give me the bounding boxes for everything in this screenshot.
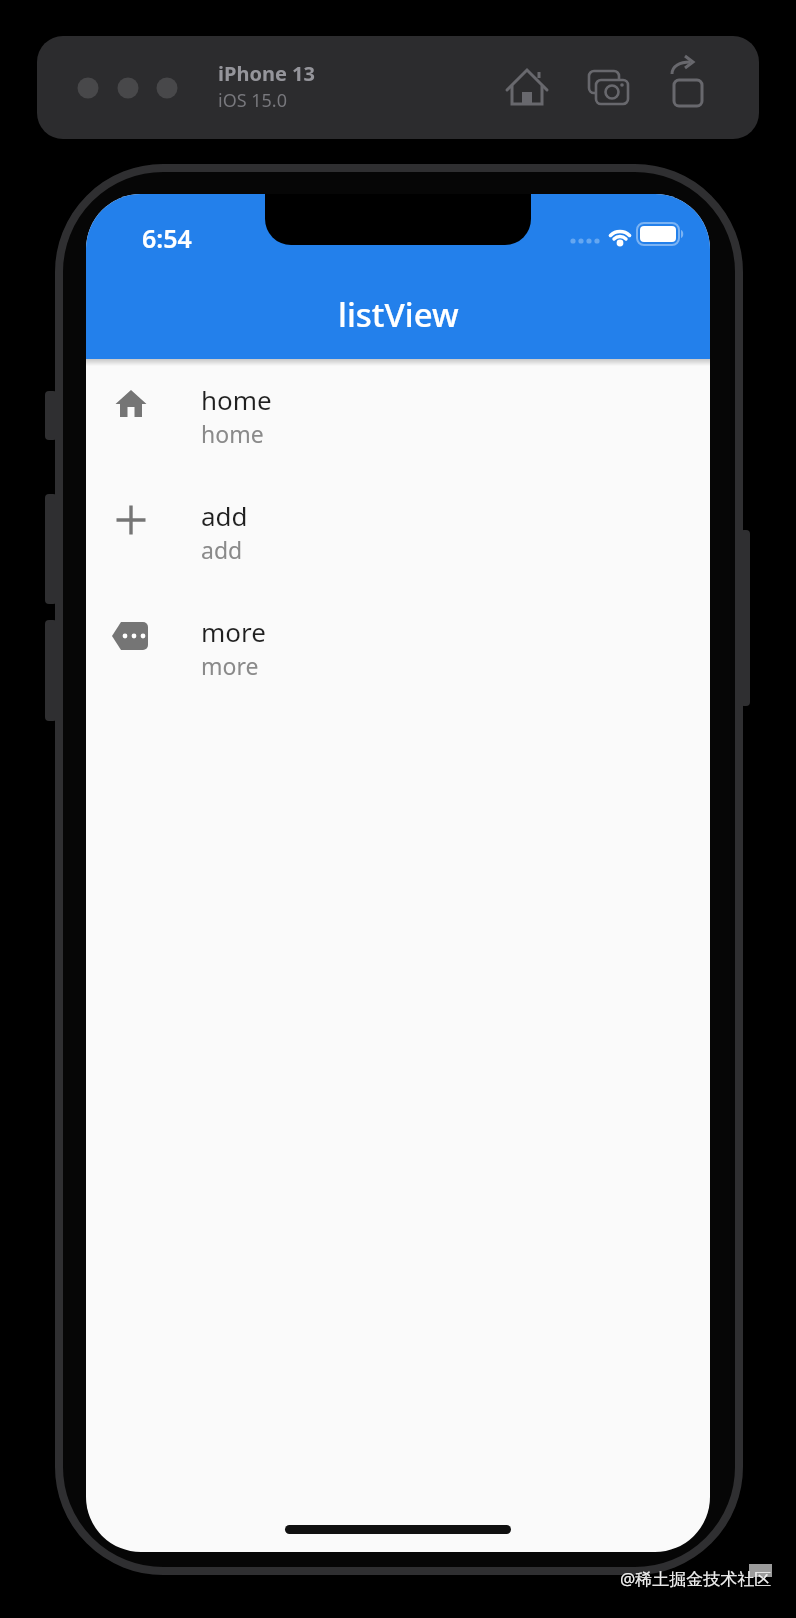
- staticText: home: [201, 418, 264, 449]
- button[interactable]: home: [86, 359, 710, 475]
- staticText: add: [201, 498, 248, 533]
- staticText: more: [201, 650, 259, 681]
- staticText: listView: [338, 292, 459, 337]
- staticText: more: [201, 614, 266, 649]
- staticText: iOS 15.0: [218, 88, 287, 113]
- staticText: 6:54: [142, 221, 192, 255]
- button[interactable]: add: [86, 475, 710, 591]
- button[interactable]: more: [86, 591, 710, 707]
- staticText: @稀土掘金技术社区: [620, 1567, 772, 1590]
- staticText: iPhone 13: [218, 60, 315, 87]
- staticText: add: [201, 534, 243, 565]
- staticText: home: [201, 382, 272, 417]
